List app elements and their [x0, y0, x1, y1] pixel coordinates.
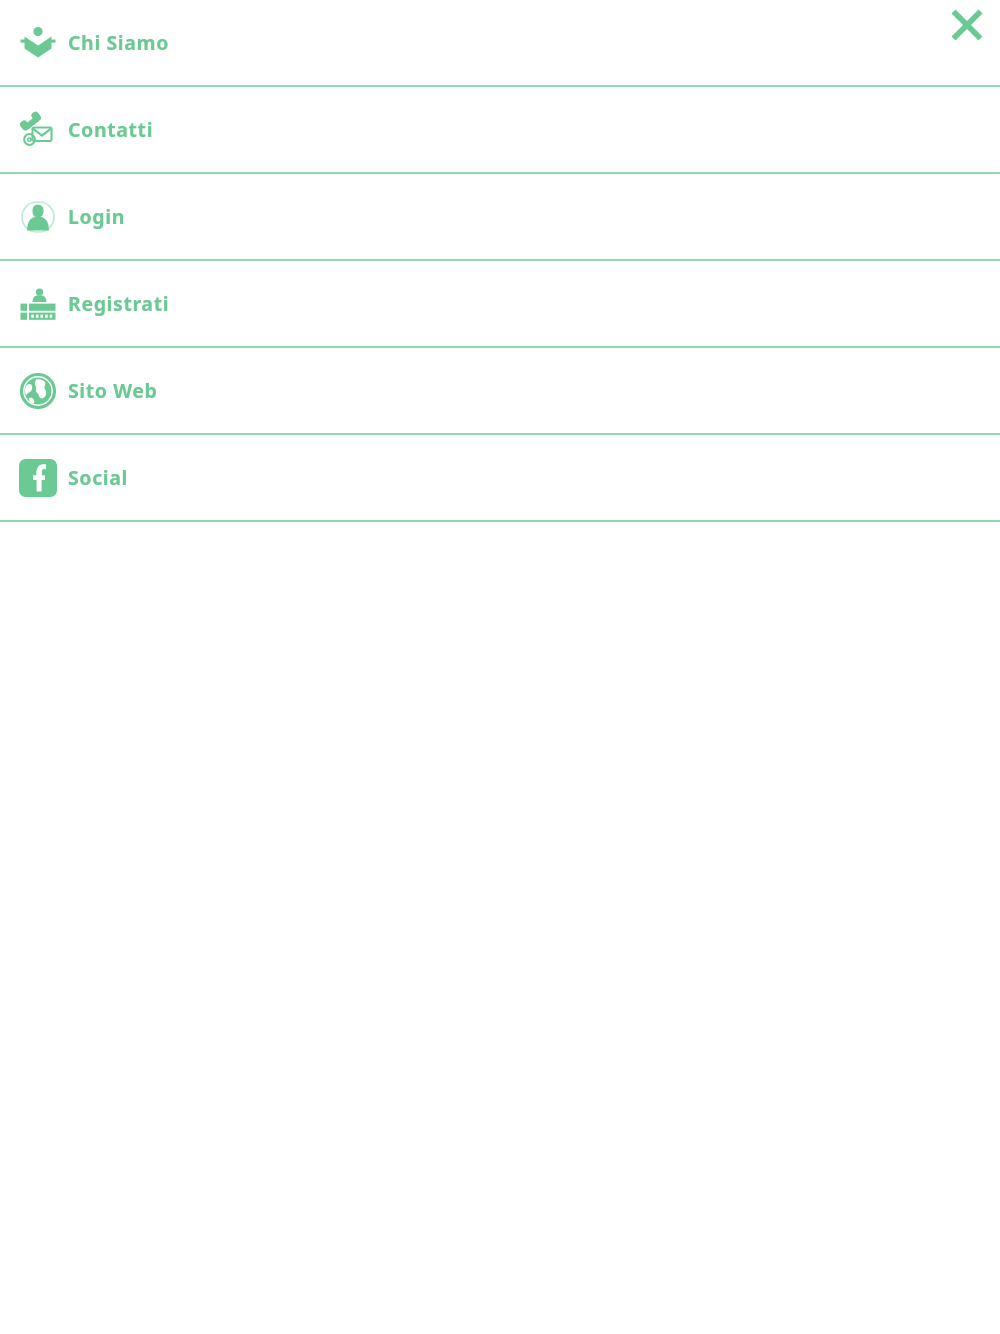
staticText: Social [68, 464, 128, 491]
button[interactable]: Registrati [0, 261, 1000, 346]
button[interactable]: Chi Siamo [0, 0, 1000, 85]
staticText: Chi Siamo [68, 29, 169, 56]
button[interactable]: Close [944, 2, 990, 48]
staticText: Sito Web [68, 377, 158, 404]
button[interactable]: Contatti [0, 87, 1000, 172]
button[interactable]: Sito Web [0, 348, 1000, 433]
button[interactable]: Social [0, 435, 1000, 520]
staticText: Login [68, 203, 125, 230]
button[interactable]: Login [0, 174, 1000, 259]
staticText: Contatti [68, 116, 154, 143]
staticText: Registrati [68, 290, 170, 317]
